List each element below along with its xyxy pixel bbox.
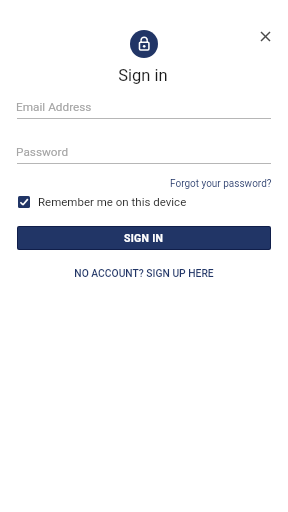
button[interactable]: Email Address [17, 99, 271, 119]
staticText: Forgot your password? [170, 178, 272, 190]
staticText: Remember me on this device [38, 195, 187, 208]
staticText: Sign in [0, 66, 287, 85]
button[interactable]: Forgot your password? [170, 178, 272, 190]
button[interactable]: Password [17, 144, 271, 164]
button[interactable]: SIGN IN [17, 226, 271, 250]
button[interactable]: Close [253, 24, 278, 49]
staticText: Email Address [16, 100, 92, 114]
button[interactable]: NO ACCOUNT? SIGN UP HERE [0, 267, 288, 279]
staticText: Password [16, 145, 69, 159]
button[interactable]: Remember me on this device [16, 194, 188, 211]
staticText: SIGN IN [124, 232, 164, 244]
staticText: NO ACCOUNT? SIGN UP HERE [0, 267, 288, 279]
